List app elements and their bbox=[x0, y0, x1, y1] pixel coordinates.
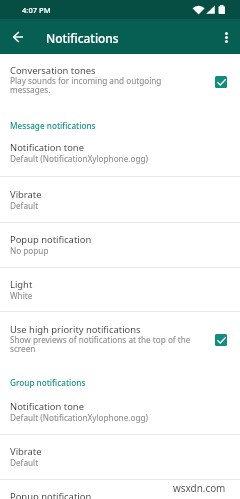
staticText: Conversation tones bbox=[10, 64, 96, 77]
staticText: Notification tone bbox=[10, 141, 84, 154]
staticText: Popup notification bbox=[10, 233, 92, 246]
staticText: Vibrate bbox=[10, 445, 42, 458]
staticText: messages. bbox=[10, 84, 51, 95]
button[interactable]: Vibrate bbox=[0, 177, 240, 222]
button[interactable]: Back bbox=[4, 23, 32, 51]
staticText: Default (NotificationXylophone.ogg) bbox=[10, 412, 148, 423]
staticText: Vibrate bbox=[10, 188, 42, 201]
staticText: screen bbox=[10, 343, 36, 354]
staticText: Notification tone bbox=[10, 400, 84, 413]
staticText: Notifications bbox=[46, 30, 119, 46]
button[interactable]: Conversation tones bbox=[0, 54, 240, 110]
button[interactable]: Popup notification bbox=[0, 223, 240, 267]
staticText: Default bbox=[10, 457, 39, 468]
button[interactable]: Use high priority notifications bbox=[0, 312, 240, 361]
button[interactable]: Light bbox=[0, 268, 240, 311]
button[interactable]: Notification tone bbox=[0, 390, 240, 434]
button[interactable]: Notification tone bbox=[0, 131, 240, 176]
button[interactable]: Popup notification bbox=[0, 480, 240, 499]
staticText: Message notifications bbox=[10, 120, 96, 131]
staticText: 4:07 PM bbox=[22, 5, 51, 15]
button[interactable]: More options bbox=[212, 23, 240, 51]
staticText: No popup bbox=[10, 245, 49, 256]
staticText: Play sounds for incoming and outgoing bbox=[10, 75, 162, 86]
staticText: Popup notification bbox=[10, 490, 92, 499]
staticText: Light bbox=[10, 278, 33, 291]
staticText: wsxdn.com bbox=[173, 481, 226, 494]
staticText: Group notifications bbox=[10, 377, 86, 388]
staticText: White bbox=[10, 290, 33, 301]
staticText: Default (NotificationXylophone.ogg) bbox=[10, 153, 148, 164]
button[interactable]: Vibrate bbox=[0, 435, 240, 479]
staticText: Use high priority notifications bbox=[10, 323, 141, 336]
staticText: Show previews of notifications at the to… bbox=[10, 334, 191, 345]
staticText: Default bbox=[10, 200, 39, 211]
